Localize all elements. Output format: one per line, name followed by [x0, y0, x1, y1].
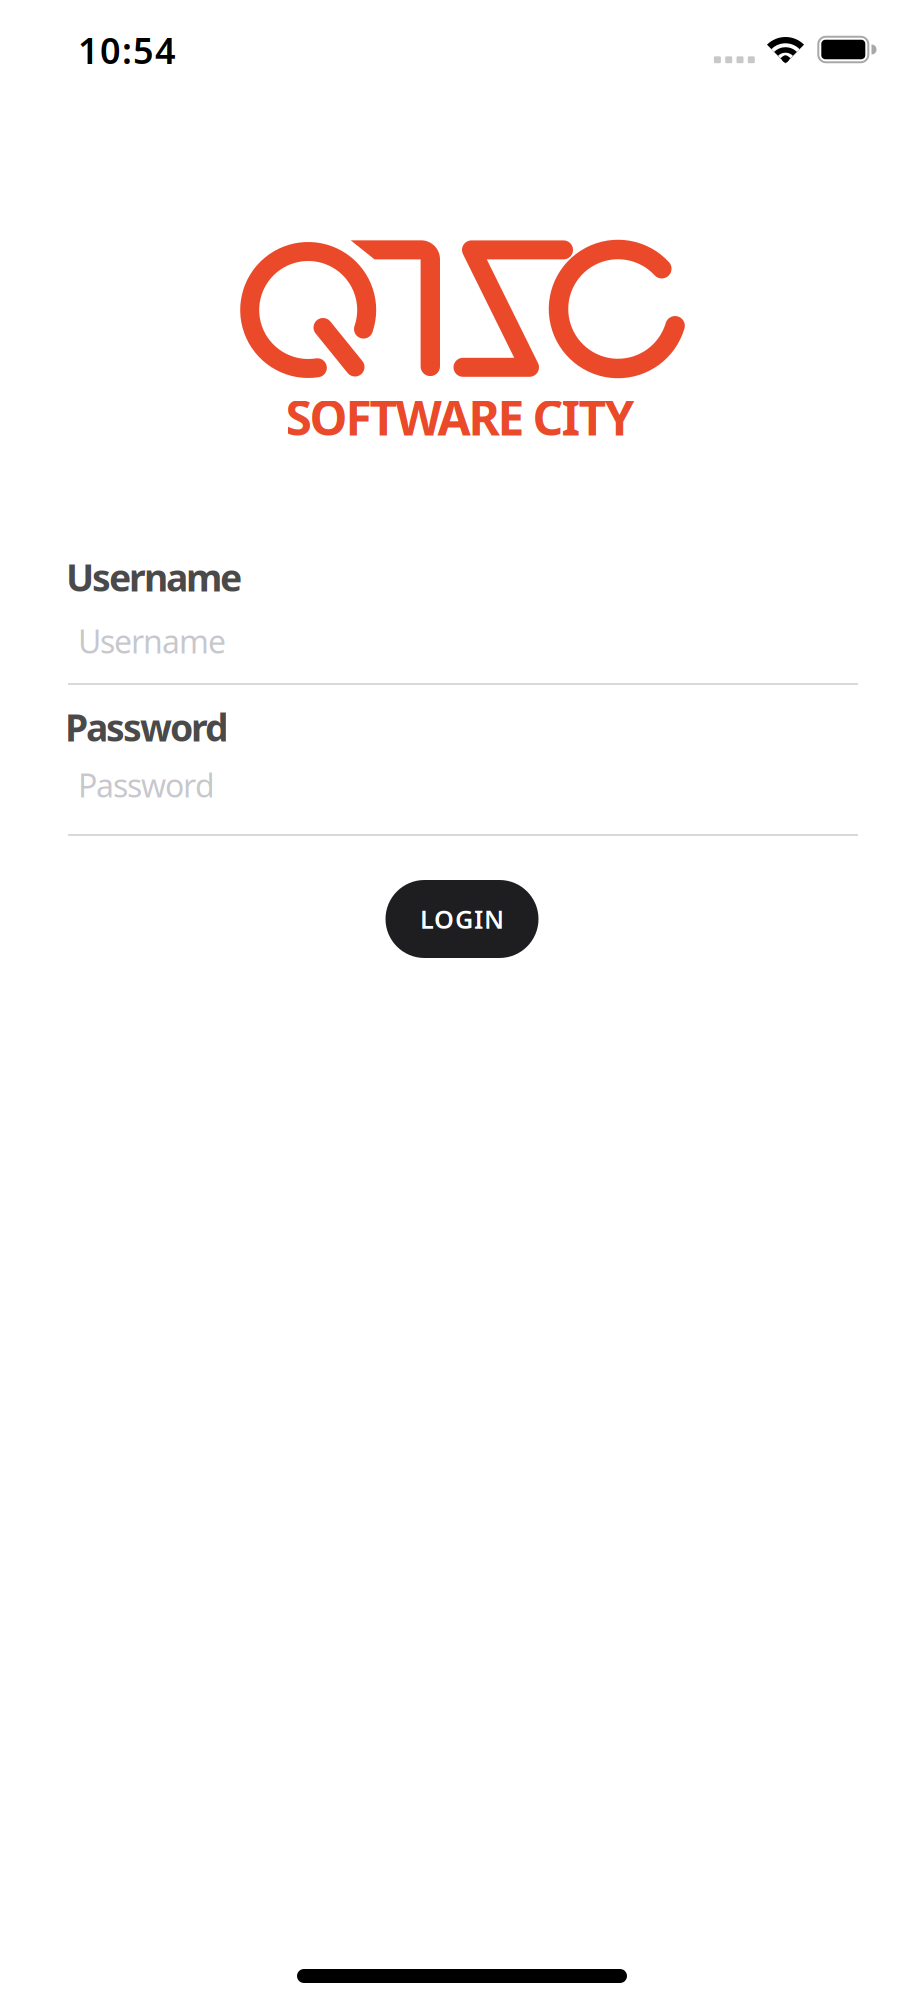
staticText: Username	[78, 620, 226, 662]
button[interactable]: LOGIN	[385, 880, 538, 958]
button[interactable]: Password	[68, 757, 858, 813]
staticText: 10:54	[78, 26, 176, 74]
staticText: Username	[66, 552, 242, 602]
staticText: Password	[65, 702, 229, 752]
staticText: LOGIN	[420, 902, 504, 936]
staticText: SOFTWARE CITY	[285, 385, 634, 449]
button[interactable]: Username	[68, 613, 858, 669]
staticText: Password	[78, 764, 215, 806]
